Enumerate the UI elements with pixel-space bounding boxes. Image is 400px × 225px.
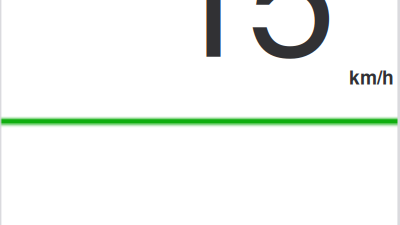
staticText: 15 [165,0,336,102]
button[interactable]: Current speed, 15 kilometres per hour [0,0,400,110]
button[interactable]: km/h [349,63,394,90]
staticText: km/h [349,63,394,90]
